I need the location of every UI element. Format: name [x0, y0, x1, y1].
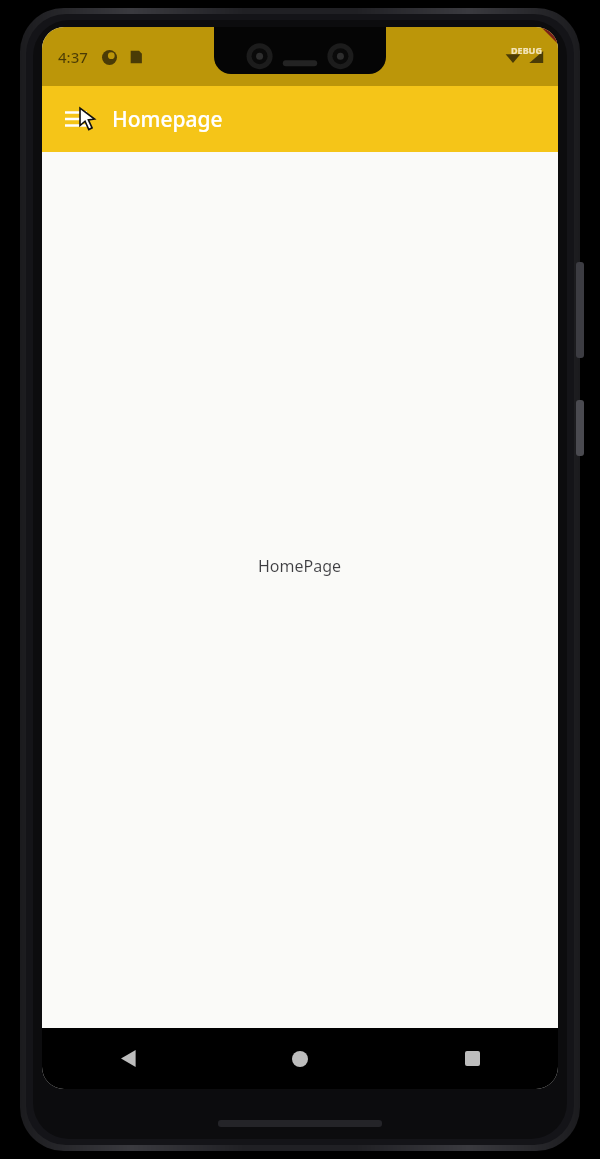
button[interactable]: Open navigation menu: [52, 95, 100, 143]
button[interactable]: Home: [214, 1028, 386, 1089]
button[interactable]: Back: [42, 1028, 214, 1089]
button[interactable]: Recent apps: [386, 1028, 558, 1089]
staticText: 4:37: [58, 47, 88, 67]
staticText: Homepage: [112, 105, 223, 134]
staticText: HomePage: [258, 555, 342, 577]
staticText: DEBUG: [511, 44, 542, 56]
